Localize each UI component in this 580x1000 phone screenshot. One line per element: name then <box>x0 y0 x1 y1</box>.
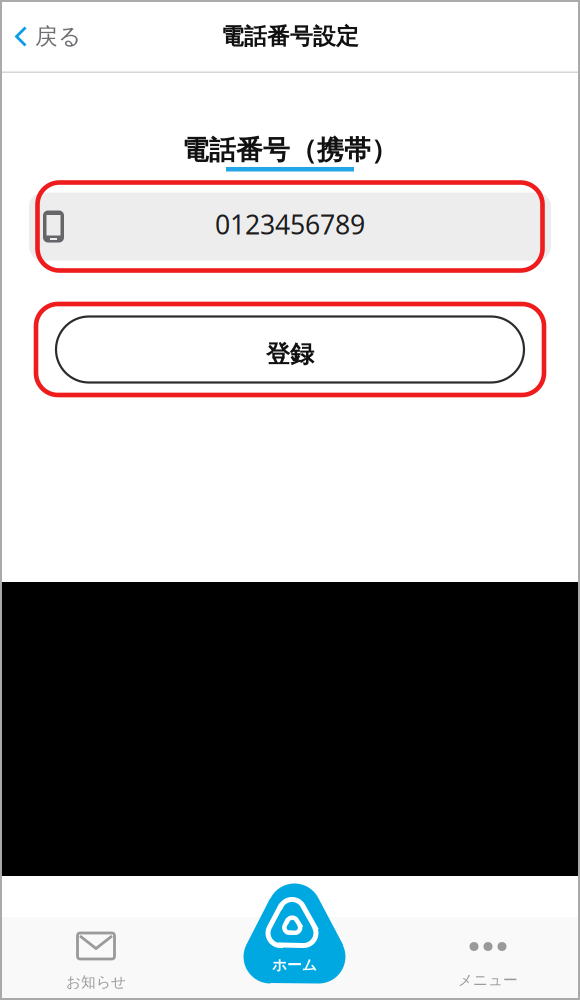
staticText: 登録 <box>266 339 314 369</box>
button[interactable]: 戻る <box>0 0 93 72</box>
button[interactable]: お知らせ <box>0 917 192 1000</box>
staticText: 電話番号（携帯） <box>182 134 398 166</box>
button[interactable]: 登録 <box>56 316 524 382</box>
staticText: お知らせ <box>66 973 126 991</box>
staticText: 電話番号設定 <box>221 23 359 50</box>
button[interactable]: メニュー <box>396 917 580 1000</box>
staticText: ホーム <box>272 956 317 974</box>
staticText: 0123456789 <box>215 206 365 242</box>
button[interactable]: ホーム <box>243 884 346 983</box>
staticText: メニュー <box>458 971 518 989</box>
staticText: 戻る <box>35 23 81 50</box>
